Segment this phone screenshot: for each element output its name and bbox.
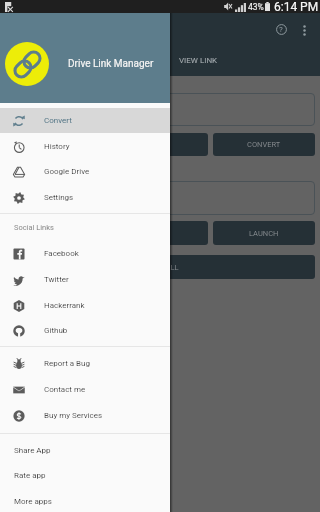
staticText: Rate app <box>14 471 46 480</box>
staticText: Drive Link Manager <box>68 58 154 70</box>
staticText: ? <box>279 25 283 34</box>
button[interactable]: CREATE LINK <box>0 48 160 72</box>
button[interactable]: COPY <box>5 221 208 245</box>
staticText: Convert <box>44 116 72 125</box>
staticText: VIEW LINK <box>179 56 218 65</box>
button[interactable]: Twitter <box>0 267 170 292</box>
staticText: Facebook <box>44 249 79 258</box>
staticText: Settings <box>44 193 74 202</box>
staticText: Share App <box>14 446 51 455</box>
staticText: Twitter <box>44 275 69 284</box>
button[interactable]: Help <box>271 19 292 40</box>
button[interactable]: PASTE <box>5 133 208 156</box>
button[interactable]: VIEW LINK <box>160 48 320 72</box>
staticText: LAUNCH <box>249 229 279 238</box>
staticText: CLEAR ALL <box>141 263 179 272</box>
staticText: Google Drive <box>44 167 90 176</box>
button[interactable]: Buy my Services <box>0 403 170 428</box>
staticText: Report a Bug <box>44 359 90 368</box>
button[interactable]: More options <box>295 21 314 40</box>
staticText: CONVERT <box>247 140 281 149</box>
staticText: Github <box>44 326 68 335</box>
button[interactable]: More apps <box>0 489 170 512</box>
staticText: Hackerrank <box>44 301 85 310</box>
staticText: History <box>44 142 70 151</box>
staticText: 6:14 PM <box>274 0 319 13</box>
button[interactable]: Rate app <box>0 463 170 488</box>
button[interactable]: History <box>0 134 170 159</box>
button[interactable]: Convert <box>0 108 170 133</box>
button[interactable] <box>5 181 315 215</box>
staticText: Social Links <box>14 223 54 232</box>
button[interactable]: App logo <box>5 42 49 86</box>
button[interactable]: Contact me <box>0 377 170 402</box>
staticText: Contact me <box>44 385 86 394</box>
button[interactable]: Github <box>0 318 170 343</box>
button[interactable]: Hackerrank <box>0 293 170 318</box>
button[interactable]: LAUNCH <box>213 221 315 245</box>
button[interactable]: Facebook <box>0 241 170 266</box>
staticText: 43% <box>248 2 264 12</box>
button[interactable] <box>5 93 315 126</box>
staticText: Buy my Services <box>44 411 103 420</box>
staticText: CREATE LINK <box>56 56 104 65</box>
button[interactable]: CONVERT <box>213 133 315 156</box>
button[interactable]: Settings <box>0 185 170 210</box>
button[interactable]: CLEAR ALL <box>5 255 315 279</box>
button[interactable]: Report a Bug <box>0 351 170 376</box>
button[interactable]: Share App <box>0 438 170 463</box>
button[interactable]: Google Drive <box>0 159 170 184</box>
staticText: More apps <box>14 497 52 506</box>
